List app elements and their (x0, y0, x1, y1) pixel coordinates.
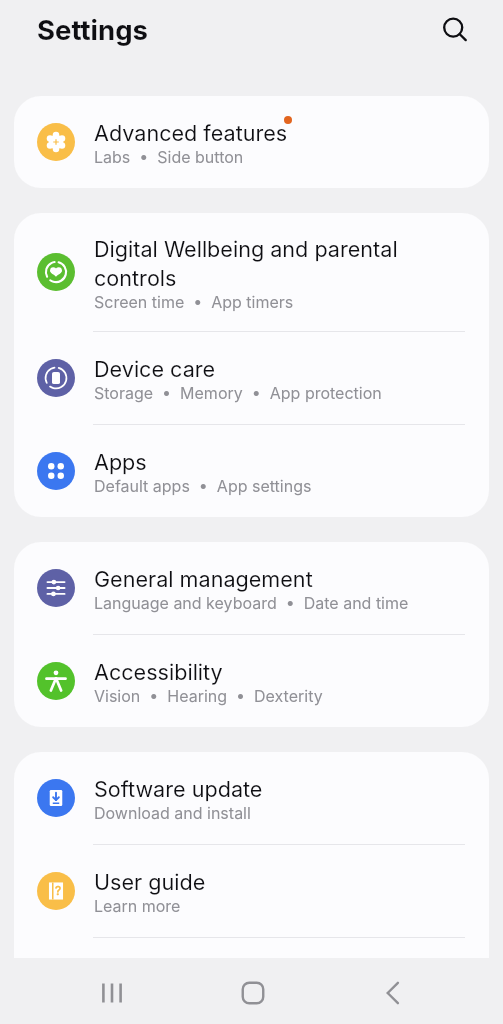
button[interactable]: Software update (14, 752, 489, 844)
staticText: Screen time • App timers (94, 292, 294, 311)
button[interactable]: Recents (84, 965, 140, 1021)
staticText: Advanced features (94, 118, 288, 147)
staticText: Digital Wellbeing and parental controls (94, 234, 469, 292)
staticText: Vision • Hearing • Dexterity (94, 686, 323, 705)
staticText: About phone (94, 957, 226, 986)
button[interactable]: Device care (14, 332, 489, 424)
staticText: ? (55, 883, 62, 898)
staticText: Software update (94, 774, 263, 803)
button[interactable]: Search (432, 7, 478, 53)
staticText: Settings (37, 13, 148, 46)
staticText: Storage • Memory • App protection (94, 383, 382, 402)
button[interactable]: Back (366, 965, 422, 1021)
button[interactable]: Home (225, 965, 281, 1021)
button[interactable]: Digital Wellbeing and parental controls (14, 213, 489, 331)
staticText: Status (94, 986, 142, 1005)
staticText: Accessibility (94, 657, 223, 686)
staticText: General management (94, 564, 313, 593)
staticText: Default apps • App settings (94, 476, 312, 495)
staticText: Download and install (94, 803, 251, 822)
button[interactable]: Accessibility (14, 635, 489, 727)
button[interactable]: About phone (14, 938, 489, 1024)
button[interactable]: General management (14, 542, 489, 634)
staticText: Language and keyboard • Date and time (94, 593, 409, 612)
staticText: Learn more (94, 896, 181, 915)
staticText: Labs • Side button (94, 147, 244, 166)
staticText: Device care (94, 354, 216, 383)
staticText: User guide (94, 867, 206, 896)
staticText: Apps (94, 447, 147, 476)
button[interactable]: Advanced features (14, 96, 489, 188)
button[interactable]: Apps (14, 425, 489, 517)
button[interactable]: ? (14, 845, 489, 937)
